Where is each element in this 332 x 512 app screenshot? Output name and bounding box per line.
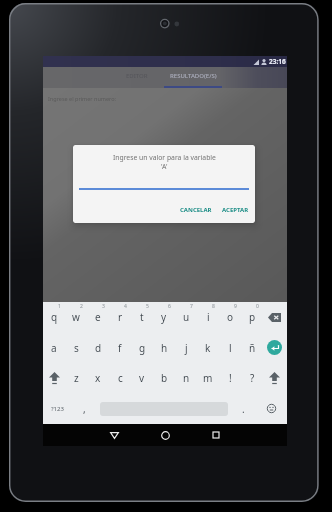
staticText: d	[95, 341, 102, 355]
staticText: g	[139, 341, 146, 355]
staticText: c	[118, 371, 123, 385]
button[interactable]: g	[131, 332, 153, 363]
staticText: m	[203, 371, 213, 385]
staticText: EDITOR	[126, 72, 148, 80]
staticText: 0	[256, 303, 259, 310]
staticText: ?123	[51, 405, 64, 413]
staticText: 9	[234, 303, 237, 310]
button[interactable]: !	[219, 363, 241, 393]
staticText: CANCELAR	[180, 206, 212, 214]
button[interactable]: b	[153, 363, 175, 393]
button[interactable]: l	[219, 332, 241, 363]
staticText: q	[51, 310, 58, 324]
button[interactable]: t	[131, 302, 153, 332]
staticText: ñ	[249, 341, 256, 355]
staticText: RESULTADO(E/S)	[170, 72, 217, 80]
staticText: e	[95, 310, 101, 324]
staticText: v	[139, 371, 145, 385]
button[interactable]: p	[241, 302, 263, 332]
button[interactable]: ?	[241, 363, 263, 393]
staticText: p	[249, 310, 256, 324]
button[interactable]	[196, 424, 236, 446]
staticText: 23:16	[269, 57, 286, 66]
staticText: l	[229, 341, 232, 355]
button[interactable]: j	[175, 332, 197, 363]
button[interactable]: x	[87, 363, 109, 393]
button[interactable]	[43, 363, 65, 393]
button[interactable]: z	[65, 363, 87, 393]
staticText: Ingrese el primer numero:	[48, 95, 117, 102]
button[interactable]: h	[153, 332, 175, 363]
staticText: h	[161, 341, 168, 355]
button[interactable]: y	[153, 302, 175, 332]
staticText: f	[118, 341, 122, 355]
button[interactable]: w	[65, 302, 87, 332]
button[interactable]: s	[65, 332, 87, 363]
button[interactable]: ?123	[43, 393, 71, 424]
button[interactable]	[255, 393, 287, 424]
staticText: t	[140, 310, 144, 324]
button[interactable]: RESULTADO(E/S)	[164, 67, 222, 88]
staticText: n	[183, 371, 190, 385]
button[interactable]	[145, 424, 185, 446]
staticText: b	[161, 371, 168, 385]
staticText: !	[229, 371, 232, 385]
staticText: k	[205, 341, 211, 355]
button[interactable]: v	[131, 363, 153, 393]
staticText: ACEPTAR	[222, 206, 249, 214]
button[interactable]: CANCELAR	[176, 204, 216, 216]
staticText: r	[118, 310, 123, 324]
button[interactable]: ACEPTAR	[218, 204, 253, 216]
button[interactable]: i	[197, 302, 219, 332]
button[interactable]: m	[197, 363, 219, 393]
button[interactable]	[263, 332, 285, 363]
button[interactable]: u	[175, 302, 197, 332]
button[interactable]: ñ	[241, 332, 263, 363]
button[interactable]: .	[231, 393, 255, 424]
staticText: j	[185, 341, 188, 355]
button[interactable]	[263, 302, 285, 332]
staticText: 1	[58, 303, 61, 310]
button[interactable]: k	[197, 332, 219, 363]
button[interactable]: a	[43, 332, 65, 363]
button[interactable]: q	[43, 302, 65, 332]
staticText: a	[51, 341, 57, 355]
staticText: 6	[168, 303, 171, 310]
staticText: 2	[80, 303, 83, 310]
staticText: z	[74, 371, 79, 385]
staticText: 7	[190, 303, 193, 310]
staticText: s	[74, 341, 79, 355]
staticText: Ingrese un valor para la variable	[113, 153, 216, 162]
staticText: 5	[146, 303, 149, 310]
staticText: 'A'	[161, 162, 168, 171]
button[interactable]	[263, 363, 285, 393]
button[interactable]: f	[109, 332, 131, 363]
staticText: 4	[124, 303, 127, 310]
staticText: w	[72, 310, 80, 324]
staticText: o	[227, 310, 234, 324]
staticText: y	[161, 310, 167, 324]
button[interactable]: ,	[71, 393, 97, 424]
staticText: x	[95, 371, 101, 385]
staticText: ,	[83, 402, 86, 416]
button[interactable]: d	[87, 332, 109, 363]
staticText: u	[183, 310, 190, 324]
button[interactable]: r	[109, 302, 131, 332]
button[interactable]: n	[175, 363, 197, 393]
button[interactable]: c	[109, 363, 131, 393]
button[interactable]	[94, 424, 134, 446]
button[interactable]: o	[219, 302, 241, 332]
staticText: i	[207, 310, 210, 324]
staticText: 8	[212, 303, 215, 310]
staticText: .	[242, 402, 245, 416]
button[interactable]: e	[87, 302, 109, 332]
staticText: ?	[250, 371, 255, 385]
staticText: 3	[102, 303, 105, 310]
